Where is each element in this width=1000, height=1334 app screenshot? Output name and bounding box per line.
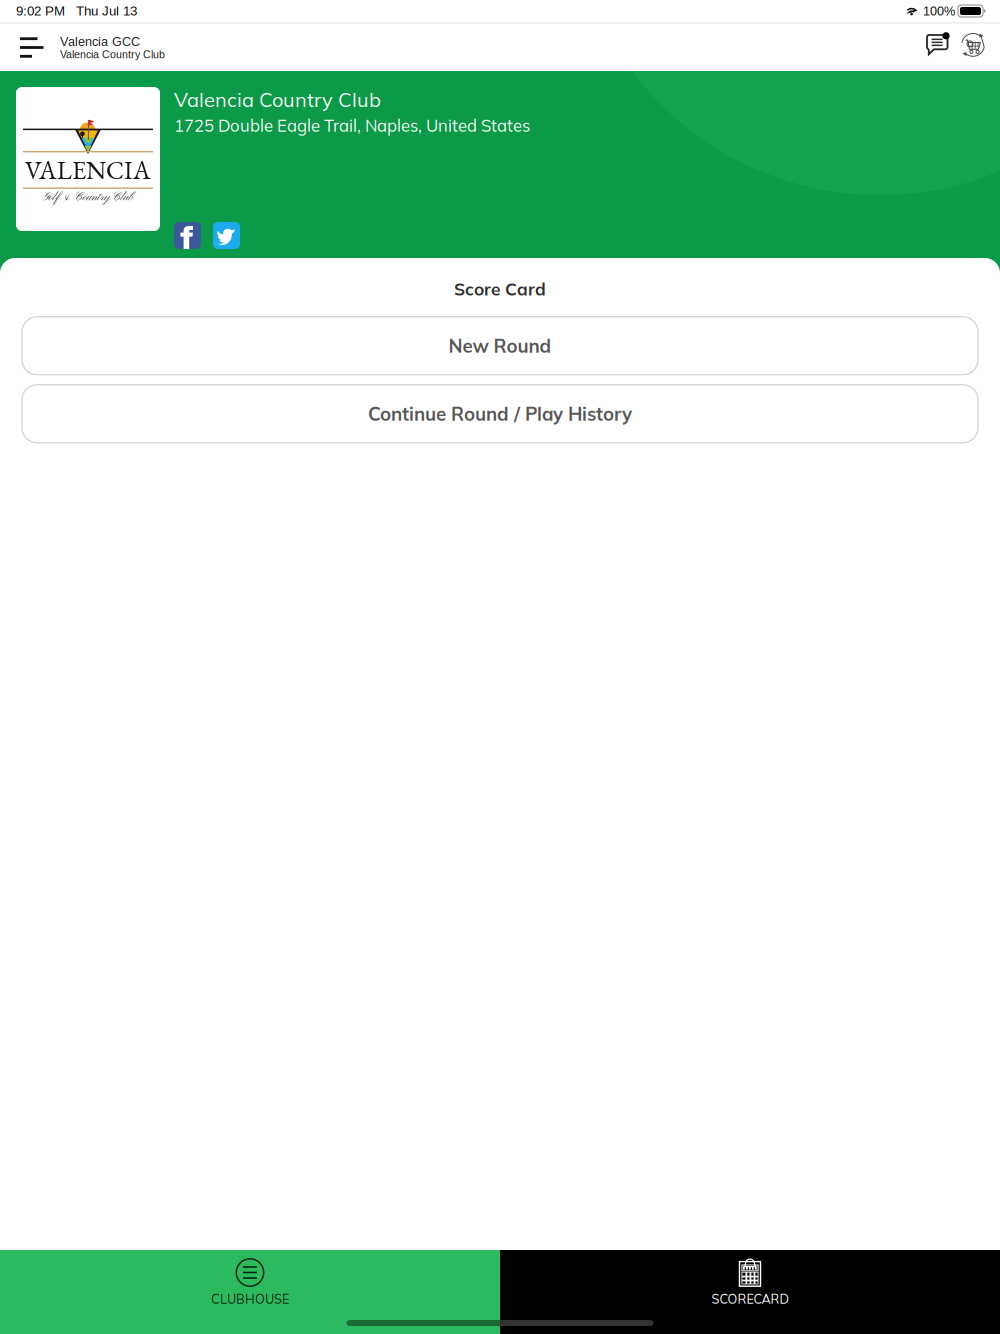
button[interactable]: SCORECARD (500, 1250, 1000, 1334)
staticText: Valencia GCC (60, 34, 140, 49)
button[interactable]: CLUBHOUSE (0, 1250, 500, 1334)
button[interactable]: Messages (920, 24, 955, 71)
staticText: Thu Jul 13 (76, 4, 137, 18)
staticText: Score Card (454, 278, 546, 300)
staticText: Continue Round / Play History (368, 402, 632, 425)
staticText: Valencia Country Club (174, 87, 381, 112)
staticText: 1725 Double Eagle Trail, Naples, United … (174, 115, 530, 136)
button[interactable]: New Round (22, 317, 978, 375)
staticText: VALENCIA (25, 153, 151, 186)
staticText: CLUBHOUSE (211, 1291, 289, 1307)
button[interactable]: Twitter (213, 222, 240, 249)
staticText: Golf & Country Club (42, 190, 133, 205)
button[interactable]: Facebook (174, 222, 201, 249)
staticText: Valencia Country Club (60, 49, 165, 60)
staticText: New Round (448, 334, 551, 357)
staticText: SCORECARD (711, 1291, 788, 1307)
button[interactable]: Continue Round / Play History (22, 385, 978, 443)
button[interactable]: Pro Shop (955, 24, 991, 71)
staticText: 9:02 PM (16, 4, 65, 18)
staticText: 100% (923, 4, 955, 18)
button[interactable]: Menu (0, 24, 60, 71)
